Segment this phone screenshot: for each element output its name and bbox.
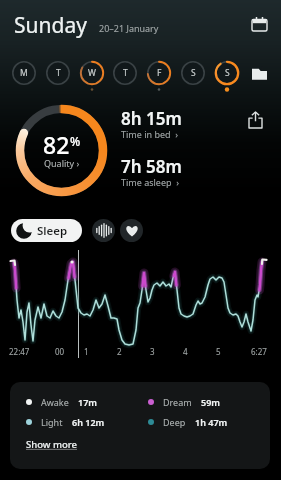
staticText: % [70,133,81,149]
staticText: 5 [216,346,221,357]
staticText: 6:27 [251,346,267,357]
staticText: 00 [55,346,65,357]
staticText: Awake [41,396,69,408]
button[interactable] [252,66,267,81]
staticText: Deep [163,416,186,428]
button[interactable]: W [79,60,105,86]
staticText: 3 [150,346,155,357]
staticText: Time asleep › [121,176,179,188]
button[interactable]: Show more [26,438,78,451]
staticText: 20–21 January [99,22,159,34]
button[interactable]: Sleep [11,219,82,242]
staticText: Dream [163,396,192,408]
staticText: 6h 12m [72,416,105,428]
button[interactable]: M [11,60,37,86]
staticText: 1 [84,346,89,357]
staticText: Time in bed › [121,128,178,140]
staticText: Sleep [37,223,68,239]
staticText: W [88,67,96,79]
button[interactable]: 8h 15m [121,107,182,190]
staticText: 7h 58m [121,155,182,178]
staticText: S [191,67,196,79]
staticText: 59m [201,396,220,408]
button[interactable] [249,112,262,128]
button[interactable]: 82 [15,104,108,197]
staticText: 8h 15m [121,107,182,130]
staticText: Sunday [14,11,87,40]
staticText: S [225,67,230,79]
button[interactable]: T [45,60,71,86]
staticText: T [123,67,128,79]
staticText: F [157,67,162,79]
button[interactable] [92,219,115,242]
button[interactable]: F [146,60,172,86]
staticText: 17m [78,396,97,408]
button[interactable] [252,17,267,32]
staticText: 2 [117,346,122,357]
button[interactable]: S [214,60,240,86]
button[interactable] [120,219,143,242]
button[interactable]: S [180,60,206,86]
button[interactable]: T [112,60,138,86]
staticText: Light [41,416,63,428]
staticText: M [20,67,28,79]
staticText: T [56,67,61,79]
staticText: Quality › [44,157,80,169]
staticText: 22:47 [9,346,30,357]
staticText: 1h 47m [195,416,228,428]
staticText: 4 [183,346,188,357]
staticText: 82 [43,129,70,160]
